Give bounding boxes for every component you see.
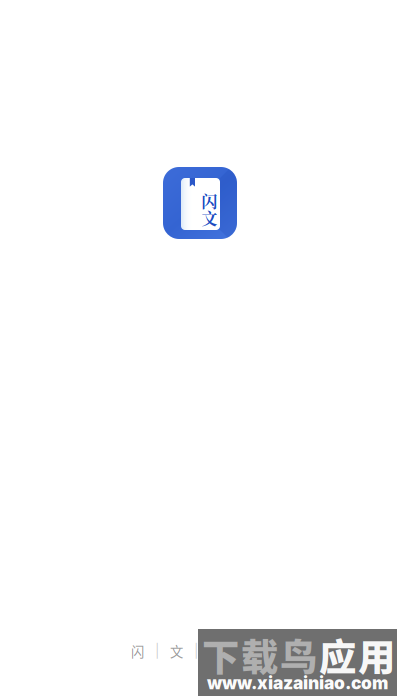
staticText: 用 [358, 628, 395, 682]
staticText: 文 [201, 206, 217, 229]
staticText: 鸟 [280, 628, 317, 682]
staticText: 载 [241, 628, 278, 682]
staticText: 下 [202, 628, 239, 682]
button[interactable]: 文 [170, 643, 183, 659]
staticText: | [155, 643, 159, 659]
staticText: 文 [170, 641, 183, 661]
staticText: | [194, 643, 198, 659]
staticText: www.xiazainiao.com [207, 672, 388, 693]
button[interactable]: 闪 [131, 643, 144, 659]
staticText: 应 [319, 628, 356, 682]
staticText: 闪 [201, 189, 217, 212]
staticText: 闪 [131, 641, 144, 661]
